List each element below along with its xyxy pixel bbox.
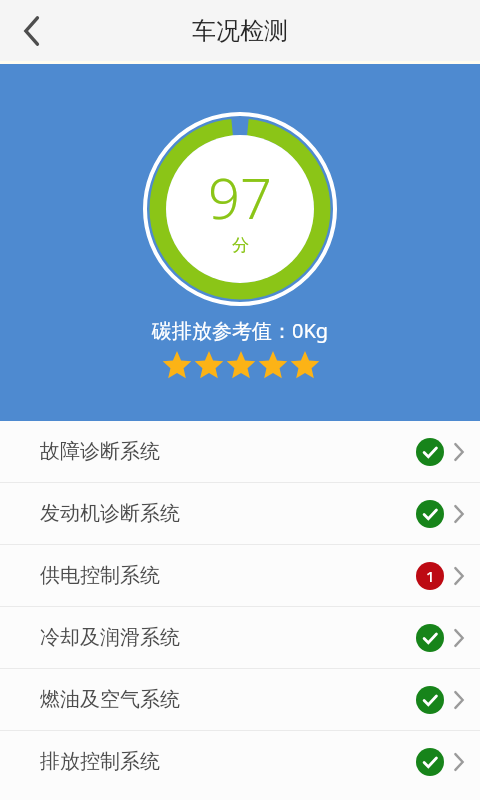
button[interactable]: 排放控制系统 (0, 731, 480, 792)
staticText: 发动机诊断系统 (40, 501, 180, 526)
staticText: 1 (426, 566, 435, 586)
staticText: 供电控制系统 (40, 563, 160, 588)
button[interactable]: 发动机诊断系统 (0, 483, 480, 544)
button[interactable]: 故障诊断系统 (0, 421, 480, 482)
button[interactable]: 供电控制系统 (0, 545, 480, 606)
button[interactable]: Back (6, 5, 58, 57)
button[interactable]: 燃油及空气系统 (0, 669, 480, 730)
staticText: 碳排放参考值：0Kg (152, 317, 329, 344)
button[interactable]: 冷却及润滑系统 (0, 607, 480, 668)
staticText: 排放控制系统 (40, 749, 160, 774)
staticText: 97 (208, 159, 272, 235)
staticText: 车况检测 (192, 16, 288, 46)
staticText: 燃油及空气系统 (40, 687, 180, 712)
staticText: 分 (232, 235, 249, 256)
staticText: 故障诊断系统 (40, 439, 160, 464)
staticText: 冷却及润滑系统 (40, 625, 180, 650)
